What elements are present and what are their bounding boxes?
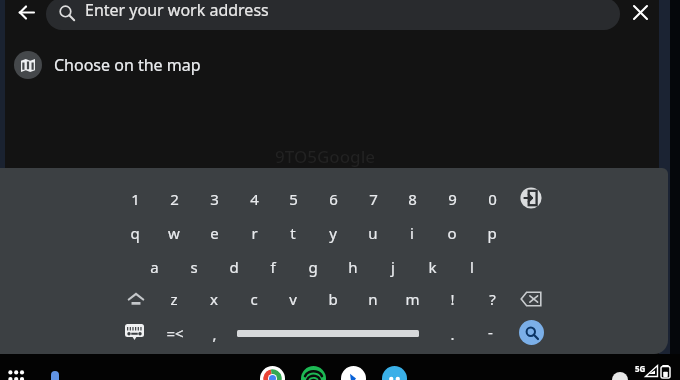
staticText: i (410, 223, 414, 243)
staticText: 5 (289, 189, 298, 209)
staticText: c (250, 289, 258, 309)
staticText: s (190, 257, 198, 277)
staticText: v (289, 289, 297, 309)
staticText: b (328, 289, 338, 309)
button[interactable]: Switch input (511, 183, 551, 213)
button[interactable]: - (470, 317, 510, 347)
button[interactable]: Search (515, 316, 547, 348)
button[interactable]: f (253, 252, 293, 282)
button[interactable]: s (174, 252, 214, 282)
button[interactable]: Space (228, 317, 428, 347)
button[interactable]: Close (624, 0, 656, 28)
button[interactable]: 1 (115, 184, 155, 214)
staticText: h (348, 257, 358, 277)
button[interactable]: h (333, 252, 373, 282)
staticText: 9 (448, 189, 457, 209)
staticText: m (405, 289, 420, 309)
button[interactable]: 3 (194, 184, 234, 214)
button[interactable]: =< (155, 318, 195, 348)
staticText: z (170, 289, 178, 309)
staticText: 7 (369, 189, 378, 209)
staticText: ? (489, 289, 496, 309)
staticText: - (488, 322, 493, 342)
button[interactable]: Choose on the map (0, 50, 659, 80)
button[interactable]: l (452, 252, 492, 282)
button[interactable]: z (154, 284, 194, 314)
staticText: q (130, 223, 140, 243)
staticText: Choose on the map (54, 54, 201, 76)
button[interactable]: n (353, 284, 393, 314)
button[interactable]: x (194, 284, 234, 314)
staticText: e (210, 223, 219, 243)
button[interactable]: k (412, 252, 452, 282)
button[interactable]: r (234, 218, 274, 248)
staticText: 0 (488, 189, 497, 209)
button[interactable] (46, 0, 620, 30)
button[interactable]: , (194, 319, 234, 349)
button[interactable]: q (115, 218, 155, 248)
button[interactable]: Change keyboard (114, 317, 154, 347)
button[interactable]: p (472, 218, 512, 248)
staticText: l (470, 257, 474, 277)
button[interactable]: 8 (392, 184, 432, 214)
staticText: o (447, 223, 457, 243)
staticText: p (487, 223, 497, 243)
button[interactable]: j (373, 252, 413, 282)
button[interactable]: m (392, 284, 432, 314)
staticText: 1 (131, 189, 140, 209)
button[interactable]: 9 (432, 184, 472, 214)
button[interactable]: App (341, 366, 366, 380)
button[interactable]: v (273, 284, 313, 314)
staticText: t (290, 223, 296, 243)
staticText: j (391, 257, 395, 277)
staticText: 2 (170, 189, 179, 209)
staticText: x (210, 289, 218, 309)
staticText: k (428, 257, 437, 277)
staticText: =< (166, 323, 184, 343)
button[interactable]: 6 (313, 184, 353, 214)
button[interactable]: o (432, 218, 472, 248)
staticText: , (212, 324, 217, 344)
staticText: d (229, 257, 239, 277)
button[interactable]: App (382, 366, 407, 380)
button[interactable]: d (214, 252, 254, 282)
button[interactable]: ? (472, 284, 512, 314)
button[interactable]: 4 (234, 184, 274, 214)
staticText: 9TO5Google (275, 145, 376, 168)
button[interactable]: i (392, 218, 432, 248)
staticText: ! (450, 289, 455, 309)
button[interactable]: 7 (353, 184, 393, 214)
staticText: g (308, 257, 318, 277)
staticText: u (368, 223, 378, 243)
button[interactable]: b (313, 284, 353, 314)
staticText: 4 (250, 189, 259, 209)
button[interactable]: a (134, 252, 174, 282)
staticText: f (270, 257, 276, 277)
button[interactable]: App (260, 366, 285, 380)
button[interactable]: 2 (154, 184, 194, 214)
button[interactable]: e (194, 218, 234, 248)
button[interactable]: Backspace (511, 284, 551, 314)
staticText: 3 (210, 189, 219, 209)
button[interactable]: 0 (472, 184, 512, 214)
staticText: 5G (635, 363, 646, 374)
button[interactable]: g (293, 252, 333, 282)
staticText: n (368, 289, 378, 309)
button[interactable]: . (432, 319, 472, 349)
button[interactable]: w (154, 218, 194, 248)
button[interactable]: ! (432, 284, 472, 314)
staticText: w (168, 223, 180, 243)
staticText: r (251, 223, 258, 243)
staticText: Enter your work address (85, 0, 269, 21)
button[interactable]: t (273, 218, 313, 248)
button[interactable]: y (313, 218, 353, 248)
button[interactable]: c (234, 284, 274, 314)
button[interactable]: Shift (116, 284, 156, 314)
staticText: y (329, 223, 337, 243)
button[interactable]: 5 (273, 184, 313, 214)
button[interactable]: u (353, 218, 393, 248)
button[interactable]: Back (10, 0, 42, 28)
staticText: . (450, 324, 455, 344)
button[interactable]: App (301, 366, 326, 380)
button[interactable]: All apps (8, 370, 24, 380)
